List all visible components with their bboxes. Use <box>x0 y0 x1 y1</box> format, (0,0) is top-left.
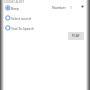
staticText: Text-To-Speech <box>11 26 35 30</box>
button[interactable]: More options <box>79 3 85 9</box>
staticText: Select sound <box>11 16 31 20</box>
button[interactable]: Select sound <box>3 13 37 22</box>
staticText: Number <box>52 5 67 10</box>
button[interactable]: PLAY <box>68 32 84 40</box>
staticText: 1 <box>70 5 72 10</box>
button[interactable]: Beep <box>3 3 37 12</box>
staticText: Beep <box>11 6 19 10</box>
button[interactable]: Number <box>52 4 72 10</box>
staticText: SOUND ALERT <box>4 0 25 4</box>
staticText: PLAY <box>72 34 80 38</box>
button[interactable]: Text-To-Speech <box>3 23 37 32</box>
